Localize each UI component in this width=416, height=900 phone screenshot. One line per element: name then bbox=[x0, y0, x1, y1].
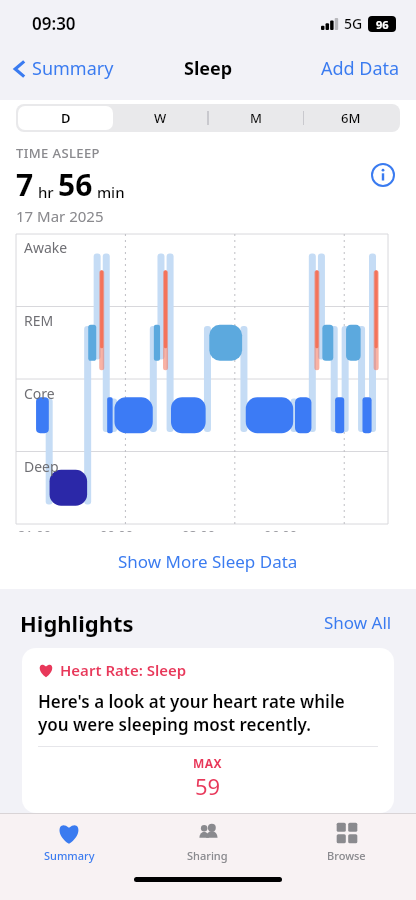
staticText: Heart Rate: Sleep bbox=[60, 660, 187, 680]
staticText: 17 Mar 2025 bbox=[16, 206, 104, 226]
staticText: Summary bbox=[32, 56, 114, 81]
staticText: Browse bbox=[327, 848, 366, 863]
staticText: Awake bbox=[24, 238, 68, 257]
button[interactable]: Show All bbox=[320, 607, 396, 638]
button[interactable]: M bbox=[208, 106, 303, 130]
button[interactable]: Info bbox=[366, 158, 400, 192]
staticText: 59 bbox=[195, 771, 221, 801]
staticText: 96 bbox=[376, 17, 389, 32]
staticText: Core bbox=[24, 384, 55, 403]
button[interactable]: Sharing bbox=[138, 814, 277, 866]
staticText: 7 bbox=[16, 164, 34, 205]
button[interactable]: Summary bbox=[0, 814, 138, 866]
staticText: Show More Sleep Data bbox=[118, 550, 298, 573]
staticText: hr bbox=[34, 182, 58, 202]
staticText: REM bbox=[24, 311, 54, 330]
staticText: 06:00 bbox=[264, 526, 298, 532]
staticText: 03:00 bbox=[182, 526, 216, 532]
button[interactable]: Show More Sleep Data bbox=[0, 538, 416, 585]
staticText: MAX bbox=[193, 755, 223, 771]
staticText: Deep bbox=[24, 457, 59, 476]
staticText: Here's a look at your heart rate while y… bbox=[38, 690, 378, 736]
staticText: 56 bbox=[58, 164, 93, 205]
button[interactable]: W bbox=[113, 106, 208, 130]
staticText: Highlights bbox=[20, 608, 320, 638]
staticText: 09:30 bbox=[32, 12, 76, 35]
staticText: D bbox=[61, 109, 71, 127]
button[interactable]: Summary bbox=[10, 52, 118, 85]
staticText: Sleep bbox=[184, 56, 233, 81]
staticText: 21:00 bbox=[18, 526, 52, 532]
button[interactable]: D bbox=[18, 106, 113, 130]
staticText: min bbox=[93, 182, 125, 202]
button[interactable]: Add Data bbox=[305, 48, 416, 89]
staticText: Summary bbox=[44, 848, 95, 863]
button[interactable]: Heart Rate: Sleep bbox=[22, 648, 394, 813]
staticText: W bbox=[154, 109, 167, 127]
staticText: 6M bbox=[341, 109, 361, 127]
staticText: 00:00 bbox=[100, 526, 134, 532]
staticText: M bbox=[250, 109, 262, 127]
button[interactable]: 6M bbox=[303, 106, 398, 130]
staticText: TIME ASLEEP bbox=[16, 144, 100, 162]
button[interactable]: Browse bbox=[277, 814, 416, 866]
staticText: 5G bbox=[344, 14, 363, 33]
staticText: Sharing bbox=[187, 848, 228, 863]
